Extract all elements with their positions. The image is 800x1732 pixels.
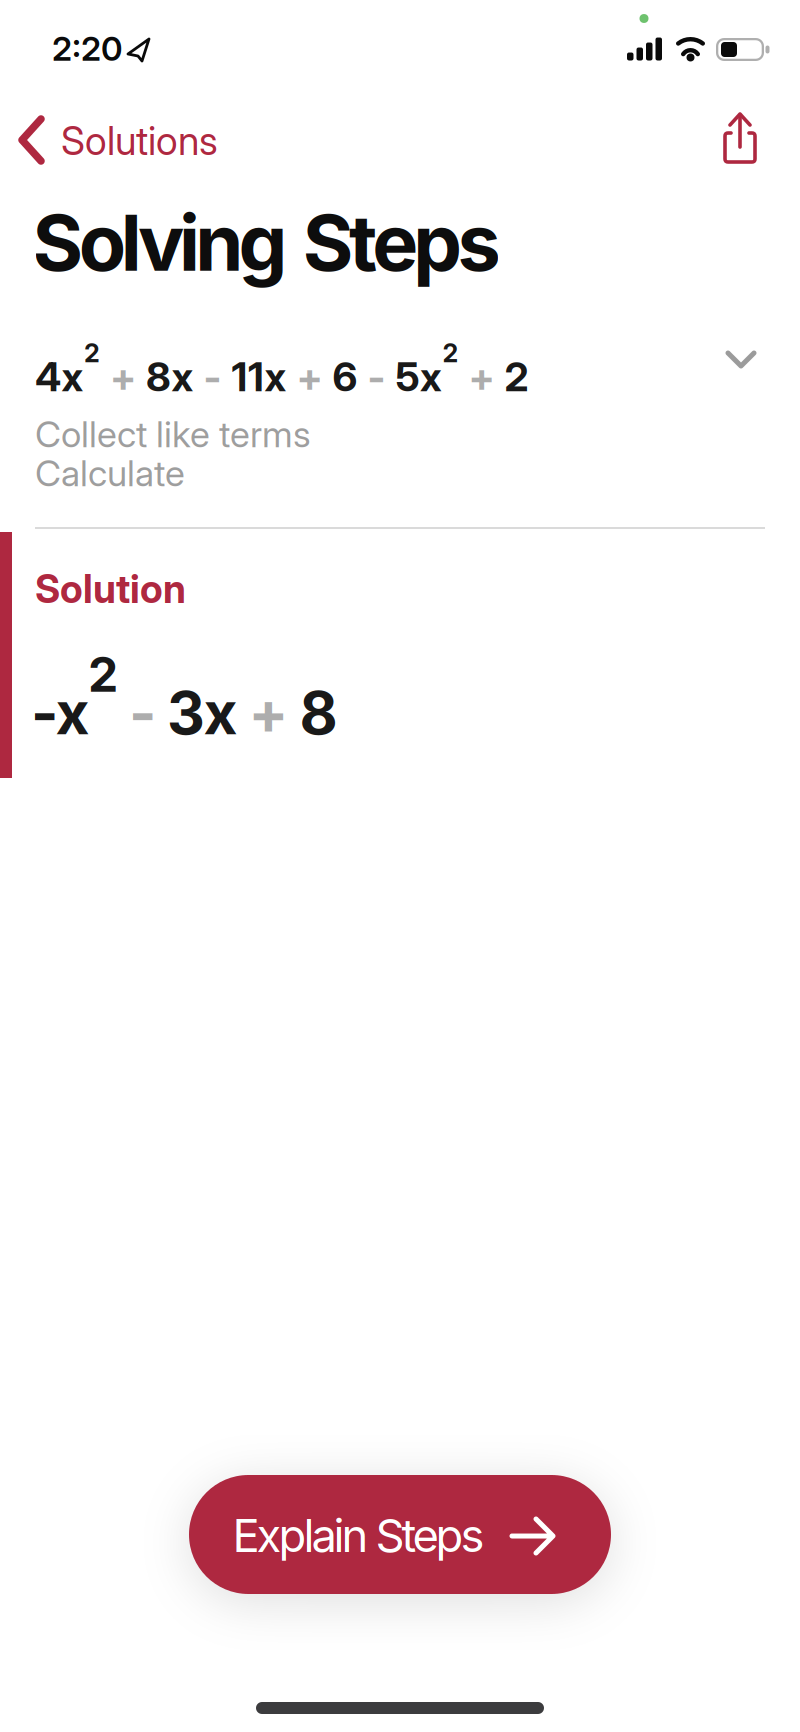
staticText: Solving Steps [32,197,500,288]
button[interactable]: Expand steps [0,0,800,1732]
staticText: Solution [35,566,186,612]
staticText: -x2 - 3x + 8 [31,646,337,747]
button[interactable]: Back to Solutions [0,0,800,1732]
staticText: 2:20 [52,29,123,68]
staticText: Collect like terms [35,413,311,455]
staticText: Solutions [61,118,218,164]
staticText: Calculate [35,452,185,494]
staticText: 4x2 + 8x - 11x + 6 - 5x2 + 2 [35,338,528,400]
staticText: Explain Steps [232,1509,484,1562]
button[interactable]: Share [0,0,800,1732]
button[interactable]: Explain Steps [189,1475,611,1594]
